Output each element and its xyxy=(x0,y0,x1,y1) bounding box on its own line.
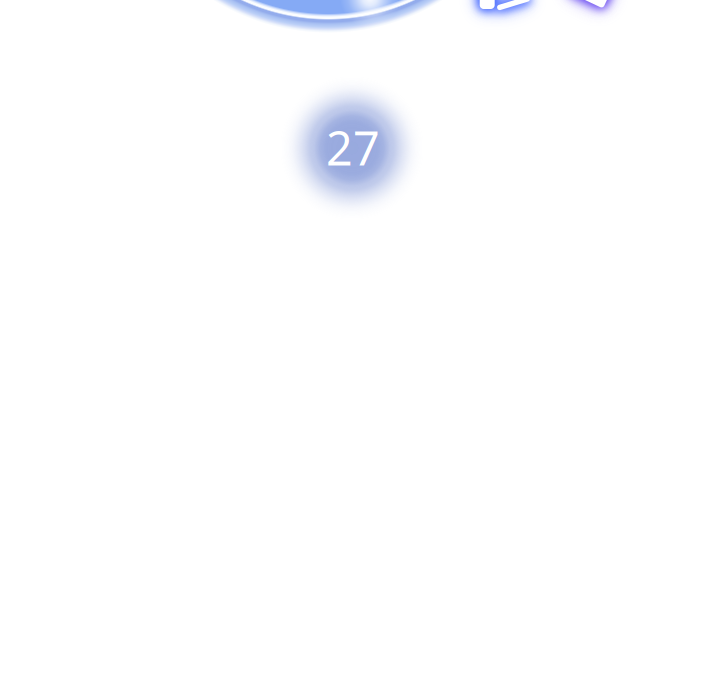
staticText: 27 xyxy=(326,116,380,178)
button[interactable]: 27 xyxy=(280,76,424,220)
